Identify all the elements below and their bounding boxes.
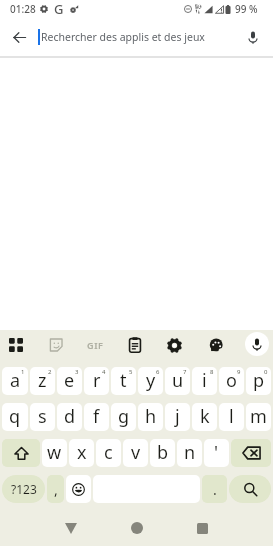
button[interactable]: Theme <box>203 332 229 358</box>
staticText: Rechercher des applis et des jeux <box>41 30 205 44</box>
staticText: g <box>118 404 130 429</box>
staticText: q <box>9 404 21 429</box>
staticText: G <box>54 0 64 18</box>
button[interactable]: v <box>123 439 148 467</box>
button[interactable]: Back <box>53 510 89 546</box>
button[interactable]: z <box>30 367 55 395</box>
staticText: 01:28 <box>10 2 36 16</box>
staticText: 7 <box>183 368 187 376</box>
button[interactable]: t <box>111 367 136 395</box>
button[interactable]: Search <box>229 475 271 503</box>
button[interactable]: Shift <box>2 439 40 467</box>
staticText: d <box>64 404 76 429</box>
staticText: h <box>145 404 157 429</box>
button[interactable]: x <box>69 439 94 467</box>
staticText: 2 <box>48 368 52 376</box>
button[interactable]: . <box>202 475 227 503</box>
button[interactable]: Apps <box>3 332 29 358</box>
staticText: . <box>213 480 217 499</box>
button[interactable]: y <box>138 367 163 395</box>
button[interactable]: c <box>96 439 121 467</box>
staticText: 1 <box>21 368 25 376</box>
button[interactable]: w <box>42 439 67 467</box>
staticText: p <box>253 368 265 393</box>
button[interactable]: e <box>57 367 82 395</box>
button[interactable]: Back <box>0 18 38 56</box>
button[interactable]: i <box>192 367 217 395</box>
staticText: e <box>64 368 75 393</box>
staticText: 5 <box>129 368 133 376</box>
button[interactable]: h <box>138 403 163 431</box>
button[interactable]: a <box>2 367 28 395</box>
button[interactable]: j <box>165 403 190 431</box>
staticText: , <box>54 480 58 499</box>
button[interactable]: g <box>111 403 136 431</box>
button[interactable]: , <box>47 475 64 503</box>
staticText: t <box>120 368 127 393</box>
staticText: ?123 <box>11 481 37 497</box>
staticText: GIF <box>87 339 104 351</box>
staticText: o <box>226 368 237 393</box>
staticText: l <box>229 404 234 429</box>
button[interactable]: l <box>219 403 244 431</box>
button[interactable]: ' <box>204 439 229 467</box>
button[interactable]: Stickers <box>43 332 69 358</box>
staticText: c <box>104 440 113 465</box>
button[interactable]: r <box>84 367 109 395</box>
staticText: f <box>93 404 100 429</box>
button[interactable]: d <box>57 403 82 431</box>
staticText: y <box>146 368 156 393</box>
button[interactable]: ?123 <box>2 475 45 503</box>
button[interactable]: Backspace <box>231 439 271 467</box>
staticText: w <box>47 440 62 465</box>
staticText: m <box>250 404 267 429</box>
button[interactable]: o <box>219 367 244 395</box>
staticText: x <box>77 440 87 465</box>
button[interactable]: Emoji <box>66 475 91 503</box>
button[interactable]: Clipboard <box>122 332 148 358</box>
staticText: 9 <box>237 368 241 376</box>
staticText: i <box>202 368 207 393</box>
staticText: 4 <box>102 368 106 376</box>
staticText: b <box>157 440 169 465</box>
button[interactable]: s <box>30 403 55 431</box>
staticText: u <box>172 368 184 393</box>
staticText: 3 <box>75 368 79 376</box>
button[interactable]: Home <box>119 510 155 546</box>
staticText: 8 <box>210 368 214 376</box>
staticText: ' <box>214 440 219 465</box>
staticText: 0 <box>264 368 268 376</box>
button[interactable]: Voice input <box>245 332 269 356</box>
staticText: s <box>38 404 47 429</box>
button[interactable]: b <box>150 439 175 467</box>
staticText: n <box>184 440 196 465</box>
button[interactable]: GIF <box>82 332 108 358</box>
button[interactable]: f <box>84 403 109 431</box>
staticText: j <box>175 404 180 429</box>
button[interactable]: Settings <box>161 332 187 358</box>
staticText: z <box>38 368 47 393</box>
button[interactable]: q <box>2 403 28 431</box>
staticText: 6 <box>156 368 160 376</box>
staticText: k <box>200 404 210 429</box>
button[interactable]: Voice search <box>235 19 271 55</box>
button[interactable]: p <box>246 367 271 395</box>
staticText: r <box>93 368 101 393</box>
button[interactable]: Recents <box>184 510 220 546</box>
button[interactable]: u <box>165 367 190 395</box>
staticText: a <box>10 368 21 393</box>
button[interactable]: m <box>246 403 271 431</box>
staticText: 99 % <box>235 2 258 16</box>
button[interactable]: n <box>177 439 202 467</box>
button[interactable]: k <box>192 403 217 431</box>
staticText: v <box>131 440 141 465</box>
